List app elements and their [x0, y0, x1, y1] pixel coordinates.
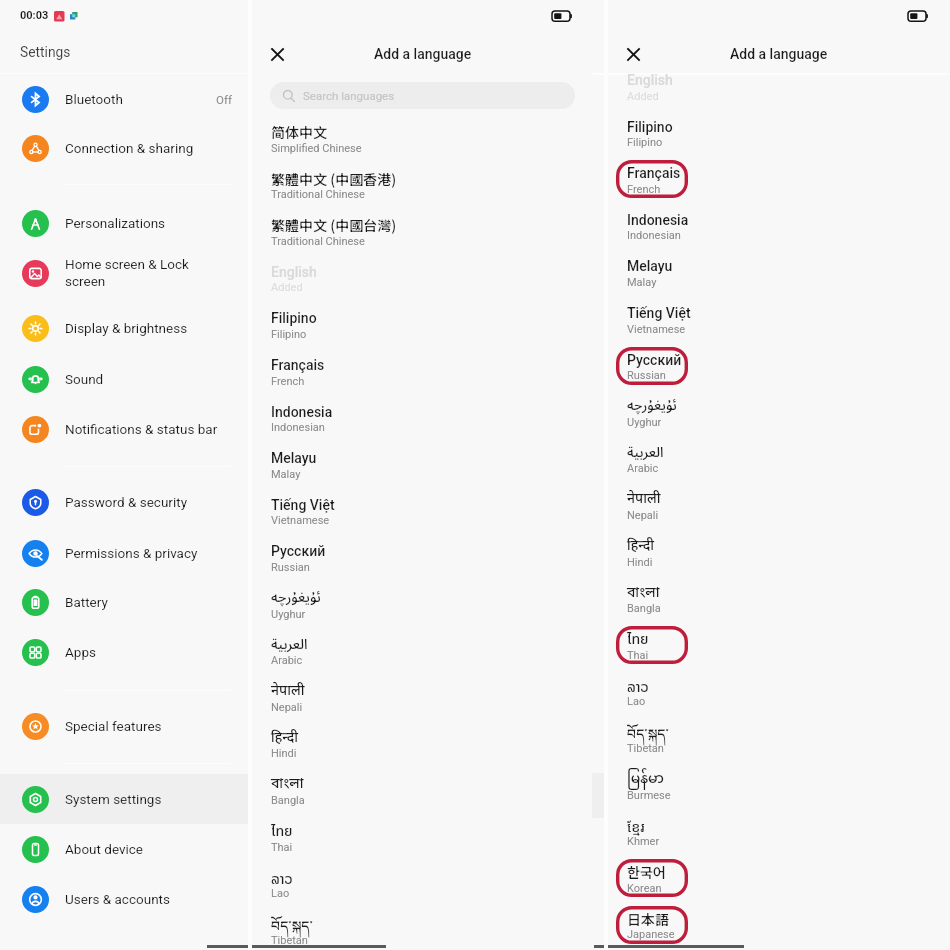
button[interactable]: Tiếng Việt	[627, 297, 827, 329]
button[interactable]: Personalizations	[0, 203, 250, 243]
button[interactable]: 繁體中文 (中國香港)	[271, 163, 471, 195]
staticText: العربية	[627, 438, 664, 468]
staticText: Permissions & privacy	[65, 545, 232, 561]
button[interactable]: Close	[264, 41, 290, 67]
staticText: ລາວ	[271, 867, 293, 890]
button[interactable]: 简体中文	[271, 116, 471, 148]
button[interactable]: English	[271, 256, 471, 288]
staticText: Burmese	[627, 789, 671, 802]
staticText: नेपाली	[627, 490, 661, 508]
button[interactable]: 한국어	[627, 856, 827, 888]
button[interactable]: ئۇيغۇرچە	[627, 390, 827, 422]
button[interactable]: العربية	[271, 629, 471, 661]
button[interactable]: မြန်မာ	[627, 763, 827, 795]
button[interactable]: Close	[620, 41, 646, 67]
staticText: Add a language	[374, 46, 472, 62]
staticText: ខ្មែរ	[627, 817, 645, 836]
button[interactable]: 繁體中文 (中國台灣)	[271, 209, 471, 241]
button[interactable]: ئۇيغۇرچە	[271, 582, 471, 614]
button[interactable]: བོད་སྐད་	[627, 718, 827, 750]
staticText: Tibetan	[627, 742, 664, 755]
staticText: Tiếng Việt	[627, 305, 691, 321]
button[interactable]: Permissions & privacy	[0, 533, 250, 573]
staticText: Sound	[65, 371, 232, 387]
button[interactable]: Connection & sharing	[0, 128, 250, 168]
staticText: Search languages	[303, 89, 395, 102]
staticText: Uyghur	[271, 608, 306, 621]
button[interactable]: Battery	[0, 582, 250, 622]
button[interactable]: Display & brightness	[0, 308, 250, 348]
button[interactable]: ไทย	[627, 623, 827, 655]
button[interactable]: Users & accounts	[0, 879, 250, 919]
button[interactable]: Sound	[0, 359, 250, 399]
button[interactable]: Indonesia	[271, 396, 471, 428]
staticText: Filipino	[271, 328, 307, 341]
button[interactable]: ไทย	[271, 815, 471, 847]
button[interactable]: Special features	[0, 706, 250, 746]
staticText: नेपाली	[271, 682, 305, 700]
staticText: About device	[65, 841, 232, 857]
button[interactable]: ລາວ	[271, 862, 471, 894]
button[interactable]: Русский	[627, 344, 827, 376]
button[interactable]: Apps	[0, 632, 250, 672]
button[interactable]: Français	[627, 157, 827, 189]
staticText: Battery	[65, 594, 232, 610]
button[interactable]: ខ្មែរ	[627, 810, 827, 842]
staticText: Added	[627, 90, 659, 103]
staticText: Nepali	[271, 701, 303, 714]
staticText: Khmer	[627, 835, 660, 848]
staticText: Special features	[65, 718, 232, 734]
staticText: Personalizations	[65, 215, 232, 231]
button[interactable]: English	[627, 64, 827, 96]
staticText: Русский	[627, 352, 682, 368]
staticText: မြန်မာ	[627, 764, 664, 795]
button[interactable]: Search languages	[270, 82, 575, 109]
button[interactable]: Notifications & status bar	[0, 409, 250, 449]
button[interactable]: Русский	[271, 535, 471, 567]
staticText: ไทย	[627, 629, 649, 650]
staticText: Vietnamese	[271, 514, 330, 527]
button[interactable]: ລາວ	[627, 670, 827, 702]
button[interactable]: Français	[271, 349, 471, 381]
button[interactable]: བོད་སྐད་	[271, 910, 471, 942]
staticText: Indonesia	[627, 212, 689, 228]
button[interactable]: Bluetooth	[0, 79, 250, 119]
staticText: Added	[271, 281, 303, 294]
staticText: Traditional Chinese	[271, 235, 365, 248]
button[interactable]: System settings	[0, 779, 250, 819]
button[interactable]: Melayu	[627, 250, 827, 282]
staticText: Filipino	[627, 136, 663, 149]
button[interactable]: 日本語	[627, 903, 827, 935]
staticText: Russian	[627, 369, 666, 382]
button[interactable]: العربية	[627, 437, 827, 469]
staticText: Add a language	[730, 46, 828, 62]
button[interactable]: বাংলা	[271, 768, 471, 800]
button[interactable]: Indonesia	[627, 204, 827, 236]
button[interactable]: Filipino	[271, 302, 471, 334]
button[interactable]: हिन्दी	[271, 722, 471, 754]
button[interactable]: Password & security	[0, 482, 250, 522]
staticText: বাংলা	[271, 775, 304, 794]
staticText: 简体中文	[271, 122, 327, 142]
button[interactable]: Tiếng Việt	[271, 489, 471, 521]
staticText: Melayu	[271, 450, 317, 466]
staticText: 繁體中文 (中國台灣)	[271, 215, 397, 235]
button[interactable]: Melayu	[271, 442, 471, 474]
staticText: French	[271, 375, 305, 388]
staticText: System settings	[65, 791, 232, 807]
button[interactable]: हिन्दी	[627, 530, 827, 562]
staticText: Français	[271, 357, 325, 373]
staticText: Home screen & Lock screen	[65, 256, 232, 290]
staticText: Settings	[20, 44, 71, 60]
staticText: 한국어	[627, 862, 666, 882]
staticText: Russian	[271, 561, 310, 574]
button[interactable]: বাংলা	[627, 577, 827, 609]
staticText: Uyghur	[627, 416, 662, 429]
button[interactable]: नेपाली	[627, 483, 827, 515]
button[interactable]: Filipino	[627, 111, 827, 143]
button[interactable]: Home screen & Lock screen	[0, 250, 250, 296]
staticText: 00:03	[20, 9, 49, 22]
button[interactable]: About device	[0, 829, 250, 869]
staticText: Filipino	[271, 310, 317, 326]
button[interactable]: नेपाली	[271, 675, 471, 707]
